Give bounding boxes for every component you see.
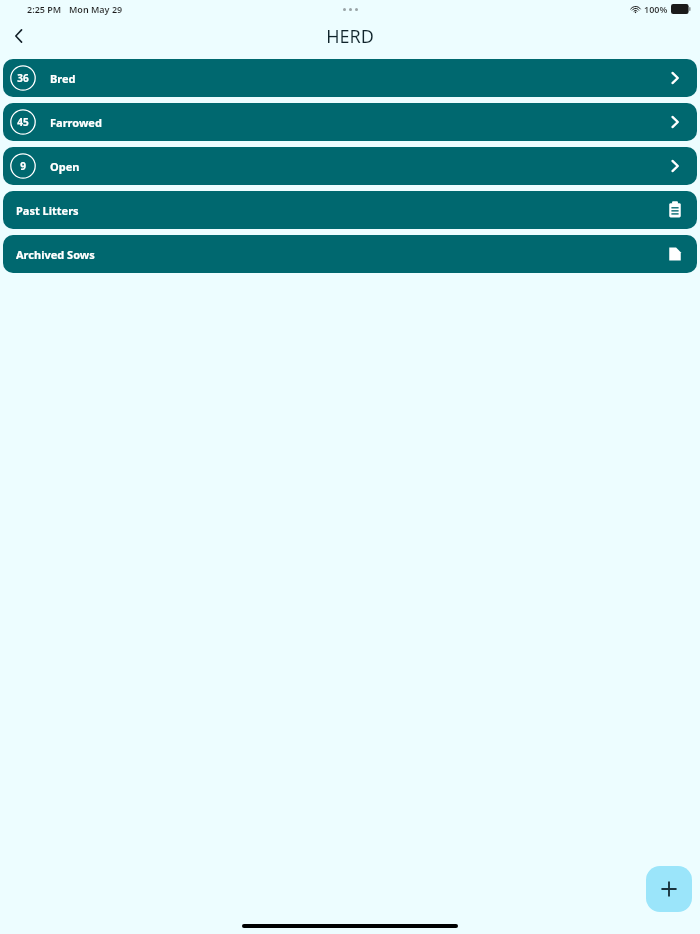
staticText: Mon May 29 bbox=[69, 3, 123, 15]
staticText: 9 bbox=[20, 159, 26, 173]
button[interactable]: 36 bbox=[3, 59, 697, 97]
staticText: Archived Sows bbox=[16, 247, 95, 262]
staticText: 36 bbox=[17, 71, 29, 85]
button[interactable]: Past Litters bbox=[3, 191, 697, 229]
staticText: HERD bbox=[326, 24, 374, 49]
button[interactable]: Archived Sows bbox=[3, 235, 697, 273]
button[interactable]: 9 bbox=[3, 147, 697, 185]
staticText: Farrowed bbox=[50, 115, 102, 130]
staticText: 100% bbox=[644, 3, 668, 15]
staticText: 2:25 PM bbox=[27, 3, 62, 15]
button[interactable]: Back bbox=[4, 21, 34, 51]
button[interactable]: Add bbox=[646, 866, 692, 912]
staticText: Open bbox=[50, 159, 80, 174]
button[interactable]: 45 bbox=[3, 103, 697, 141]
staticText: Bred bbox=[50, 71, 76, 86]
staticText: Past Litters bbox=[16, 203, 79, 218]
staticText: 45 bbox=[17, 115, 29, 129]
